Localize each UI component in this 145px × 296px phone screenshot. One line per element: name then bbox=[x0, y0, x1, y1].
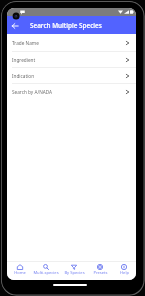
staticText: Search by A/NADA bbox=[12, 89, 53, 95]
button[interactable]: Search by A/NADA bbox=[7, 84, 136, 99]
staticText: Multi-species bbox=[33, 270, 59, 276]
staticText: Ingredient bbox=[12, 57, 36, 63]
button[interactable]: Presets bbox=[88, 261, 112, 280]
staticText: Help bbox=[120, 270, 129, 276]
staticText: Presets bbox=[93, 270, 108, 276]
staticText: Search Multiple Species bbox=[30, 21, 102, 30]
staticText: Indication bbox=[12, 73, 35, 79]
staticText: Home bbox=[14, 270, 26, 276]
button[interactable]: Ingredient bbox=[7, 52, 136, 67]
staticText: By Species bbox=[64, 270, 85, 276]
button[interactable]: Indication bbox=[7, 68, 136, 83]
button[interactable]: Multi-species bbox=[32, 261, 60, 280]
button[interactable]: Help bbox=[112, 261, 136, 280]
button[interactable]: Back bbox=[8, 19, 21, 32]
button[interactable]: By Species bbox=[60, 261, 88, 280]
button[interactable]: Home bbox=[7, 261, 32, 280]
staticText: Trade Name bbox=[12, 40, 39, 46]
button[interactable]: Trade Name bbox=[7, 34, 136, 51]
